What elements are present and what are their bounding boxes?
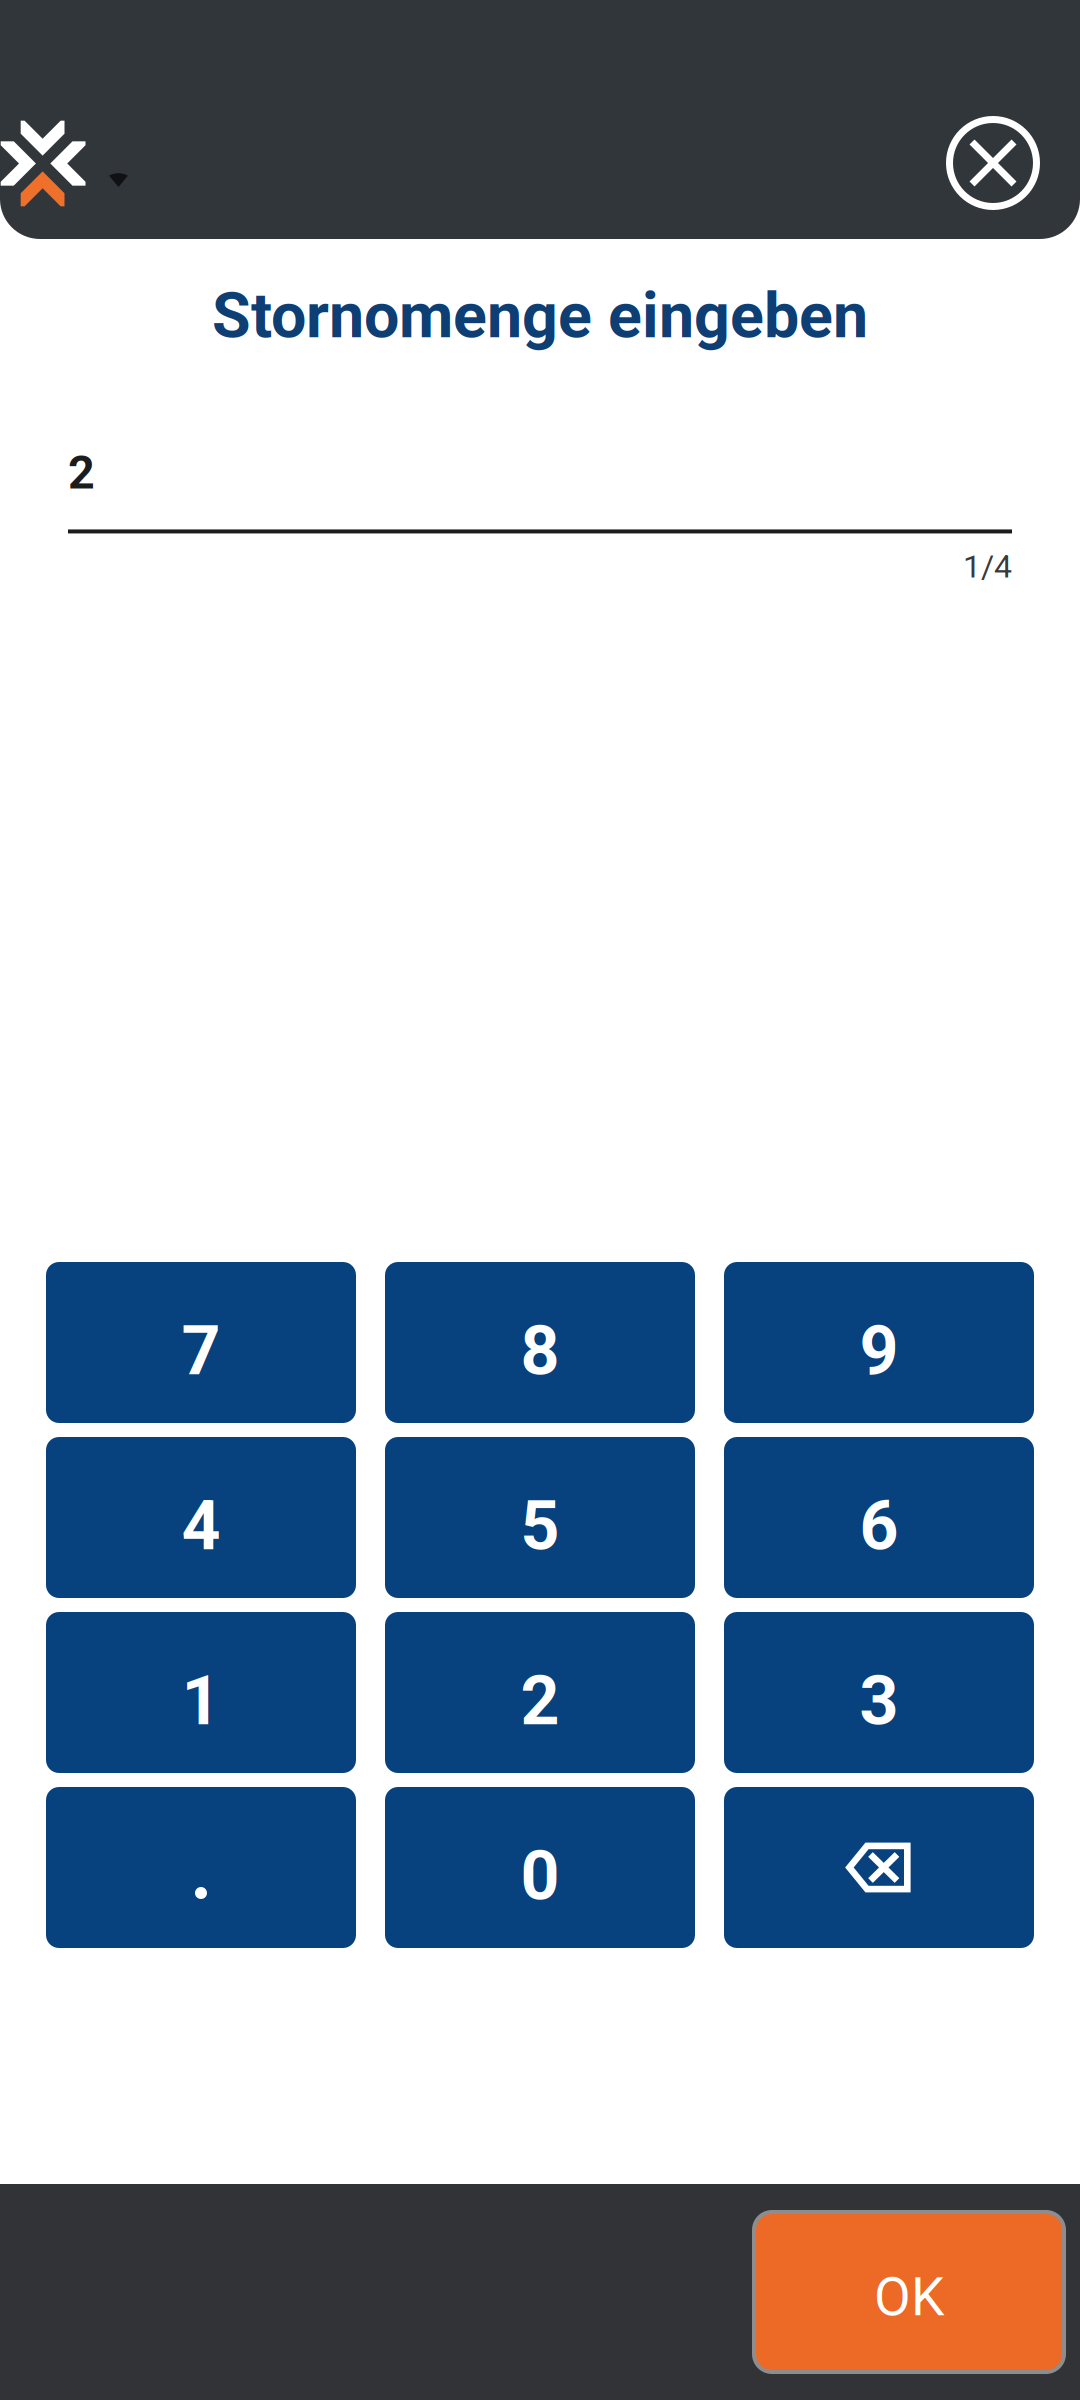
staticText: Stornomenge eingeben [212, 279, 868, 352]
staticText: 1/4 [963, 548, 1012, 585]
staticText: 8 [520, 1311, 559, 1391]
button[interactable]: 8 [385, 1262, 695, 1423]
staticText: 2 [68, 445, 95, 500]
staticText: 4 [181, 1486, 220, 1566]
staticText: 1 [181, 1661, 220, 1741]
staticText: OK [874, 2266, 944, 2328]
staticText: 3 [859, 1661, 898, 1741]
button[interactable] [724, 1787, 1034, 1948]
staticText: 7 [181, 1311, 220, 1391]
button[interactable]: 6 [724, 1437, 1034, 1598]
staticText: 9 [859, 1311, 898, 1391]
button[interactable]: 1 [46, 1612, 356, 1773]
button[interactable]: 2 [385, 1612, 695, 1773]
staticText: 6 [859, 1486, 898, 1566]
staticText: 0 [520, 1836, 559, 1916]
button[interactable] [46, 1787, 356, 1948]
button[interactable]: 3 [724, 1612, 1034, 1773]
button[interactable]: 7 [46, 1262, 356, 1423]
button[interactable]: 4 [46, 1437, 356, 1598]
staticText: 5 [520, 1486, 559, 1566]
button[interactable]: 5 [385, 1437, 695, 1598]
button[interactable]: OK [754, 2212, 1064, 2372]
staticText: 2 [520, 1661, 559, 1741]
button[interactable]: 0 [385, 1787, 695, 1948]
button[interactable]: Schließen [946, 116, 1040, 210]
button[interactable]: 9 [724, 1262, 1034, 1423]
